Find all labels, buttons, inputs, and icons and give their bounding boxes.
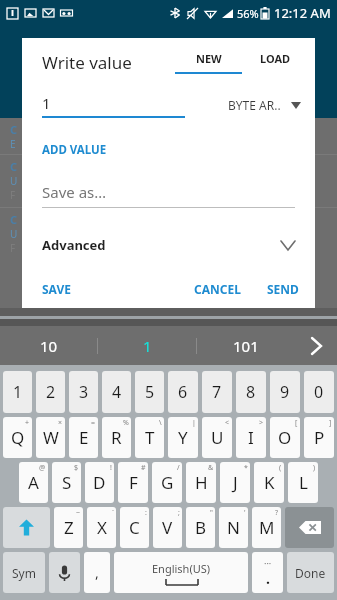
button[interactable]: 3 bbox=[69, 371, 98, 413]
staticText: 2 bbox=[46, 381, 56, 403]
button[interactable]: SAVE bbox=[22, 277, 79, 301]
button[interactable]: 101 bbox=[197, 326, 295, 365]
button[interactable]: R bbox=[102, 417, 131, 458]
button[interactable]: K bbox=[254, 462, 284, 503]
staticText: Q bbox=[11, 426, 25, 449]
staticText: > bbox=[259, 418, 264, 428]
staticText: ADD VALUE bbox=[42, 142, 107, 158]
button[interactable]: Z bbox=[54, 507, 83, 548]
button[interactable]: Q bbox=[3, 417, 32, 458]
button[interactable]: 1 bbox=[3, 371, 32, 413]
button[interactable]: H bbox=[186, 462, 216, 503]
staticText: ] bbox=[329, 418, 332, 428]
button[interactable]: 2 bbox=[36, 371, 65, 413]
staticText: L bbox=[299, 471, 308, 494]
staticText: R bbox=[111, 426, 122, 449]
staticText: 4 bbox=[112, 381, 122, 403]
button[interactable]: Y bbox=[168, 417, 198, 458]
button[interactable]: 10 bbox=[0, 326, 97, 365]
staticText: @ bbox=[39, 463, 46, 473]
staticText: 7 bbox=[212, 381, 222, 403]
staticText: ··· bbox=[264, 557, 272, 569]
staticText: $ bbox=[74, 463, 79, 473]
staticText: 8 bbox=[246, 381, 256, 403]
staticText: 10 bbox=[40, 336, 58, 356]
button[interactable]: L bbox=[288, 462, 318, 503]
button[interactable]: Voice input bbox=[49, 552, 80, 593]
staticText: 1 bbox=[42, 93, 51, 113]
staticText: = bbox=[91, 418, 96, 428]
button[interactable]: E bbox=[69, 417, 98, 458]
button[interactable]: M bbox=[252, 507, 281, 548]
button[interactable]: G bbox=[152, 462, 182, 503]
button[interactable]: S bbox=[52, 462, 81, 503]
button[interactable]: LOAD bbox=[260, 51, 291, 74]
button[interactable]: W bbox=[36, 417, 65, 458]
button[interactable]: Advanced bbox=[22, 230, 315, 260]
button[interactable]: 5 bbox=[135, 371, 164, 413]
staticText: # bbox=[141, 463, 146, 473]
staticText: CANCEL bbox=[194, 281, 241, 297]
button[interactable]: 9 bbox=[270, 371, 300, 413]
button[interactable]: Sym bbox=[3, 552, 45, 593]
button[interactable]: P bbox=[304, 417, 334, 458]
button[interactable]: U bbox=[202, 417, 232, 458]
button[interactable]: 6 bbox=[168, 371, 198, 413]
staticText: SEND bbox=[267, 281, 299, 297]
button[interactable]: NEW bbox=[175, 51, 242, 74]
button[interactable]: SEND bbox=[261, 277, 315, 301]
button[interactable]: D bbox=[85, 462, 114, 503]
staticText: ) bbox=[313, 463, 316, 473]
button[interactable]: CANCEL bbox=[188, 277, 247, 301]
button[interactable]: F bbox=[118, 462, 148, 503]
staticText: \ bbox=[159, 418, 162, 428]
staticText: F bbox=[10, 241, 16, 255]
staticText: Sym bbox=[12, 565, 36, 581]
staticText: LOAD bbox=[260, 51, 291, 66]
button[interactable]: 8 bbox=[236, 371, 266, 413]
button[interactable]: V bbox=[153, 507, 182, 548]
button[interactable]: I bbox=[236, 417, 266, 458]
button[interactable]: More suggestions bbox=[295, 326, 337, 365]
staticText: % bbox=[123, 418, 129, 428]
button[interactable]: J bbox=[220, 462, 250, 503]
button[interactable]: ADD VALUE bbox=[22, 140, 107, 160]
button[interactable]: X bbox=[87, 507, 116, 548]
button[interactable]: Value type bbox=[228, 97, 301, 113]
staticText: X bbox=[97, 516, 107, 539]
staticText: & bbox=[208, 463, 214, 473]
button[interactable]: O bbox=[270, 417, 300, 458]
staticText: < bbox=[225, 418, 230, 428]
button[interactable]: Space bbox=[114, 552, 248, 593]
staticText: | bbox=[192, 418, 196, 428]
staticText: BYTE AR.. bbox=[228, 97, 281, 113]
button[interactable]: , bbox=[84, 552, 110, 593]
button[interactable]: C bbox=[120, 507, 149, 548]
button[interactable]: 4 bbox=[102, 371, 131, 413]
button[interactable]: N bbox=[219, 507, 248, 548]
button[interactable]: Period bbox=[252, 552, 283, 593]
staticText: [ bbox=[295, 418, 298, 428]
staticText: 3 bbox=[79, 381, 89, 403]
staticText: D bbox=[93, 471, 106, 494]
staticText: S bbox=[62, 471, 72, 494]
staticText: : bbox=[145, 508, 147, 518]
button[interactable]: 0 bbox=[304, 371, 334, 413]
button[interactable]: A bbox=[19, 462, 48, 503]
button[interactable]: B bbox=[186, 507, 215, 548]
staticText: Write value bbox=[42, 51, 132, 74]
button[interactable]: 1 bbox=[98, 326, 196, 365]
staticText: 56% bbox=[237, 6, 259, 21]
staticText: 1 bbox=[13, 381, 23, 403]
staticText: I bbox=[248, 426, 254, 449]
button[interactable]: Shift bbox=[3, 507, 50, 548]
button[interactable]: 7 bbox=[202, 371, 232, 413]
button[interactable]: T bbox=[135, 417, 164, 458]
button[interactable]: Done bbox=[287, 552, 334, 593]
staticText: Z bbox=[64, 516, 74, 539]
staticText: C bbox=[10, 159, 18, 174]
button[interactable]: Backspace bbox=[285, 507, 334, 548]
staticText: 5 bbox=[145, 381, 155, 403]
staticText: M bbox=[259, 516, 275, 539]
